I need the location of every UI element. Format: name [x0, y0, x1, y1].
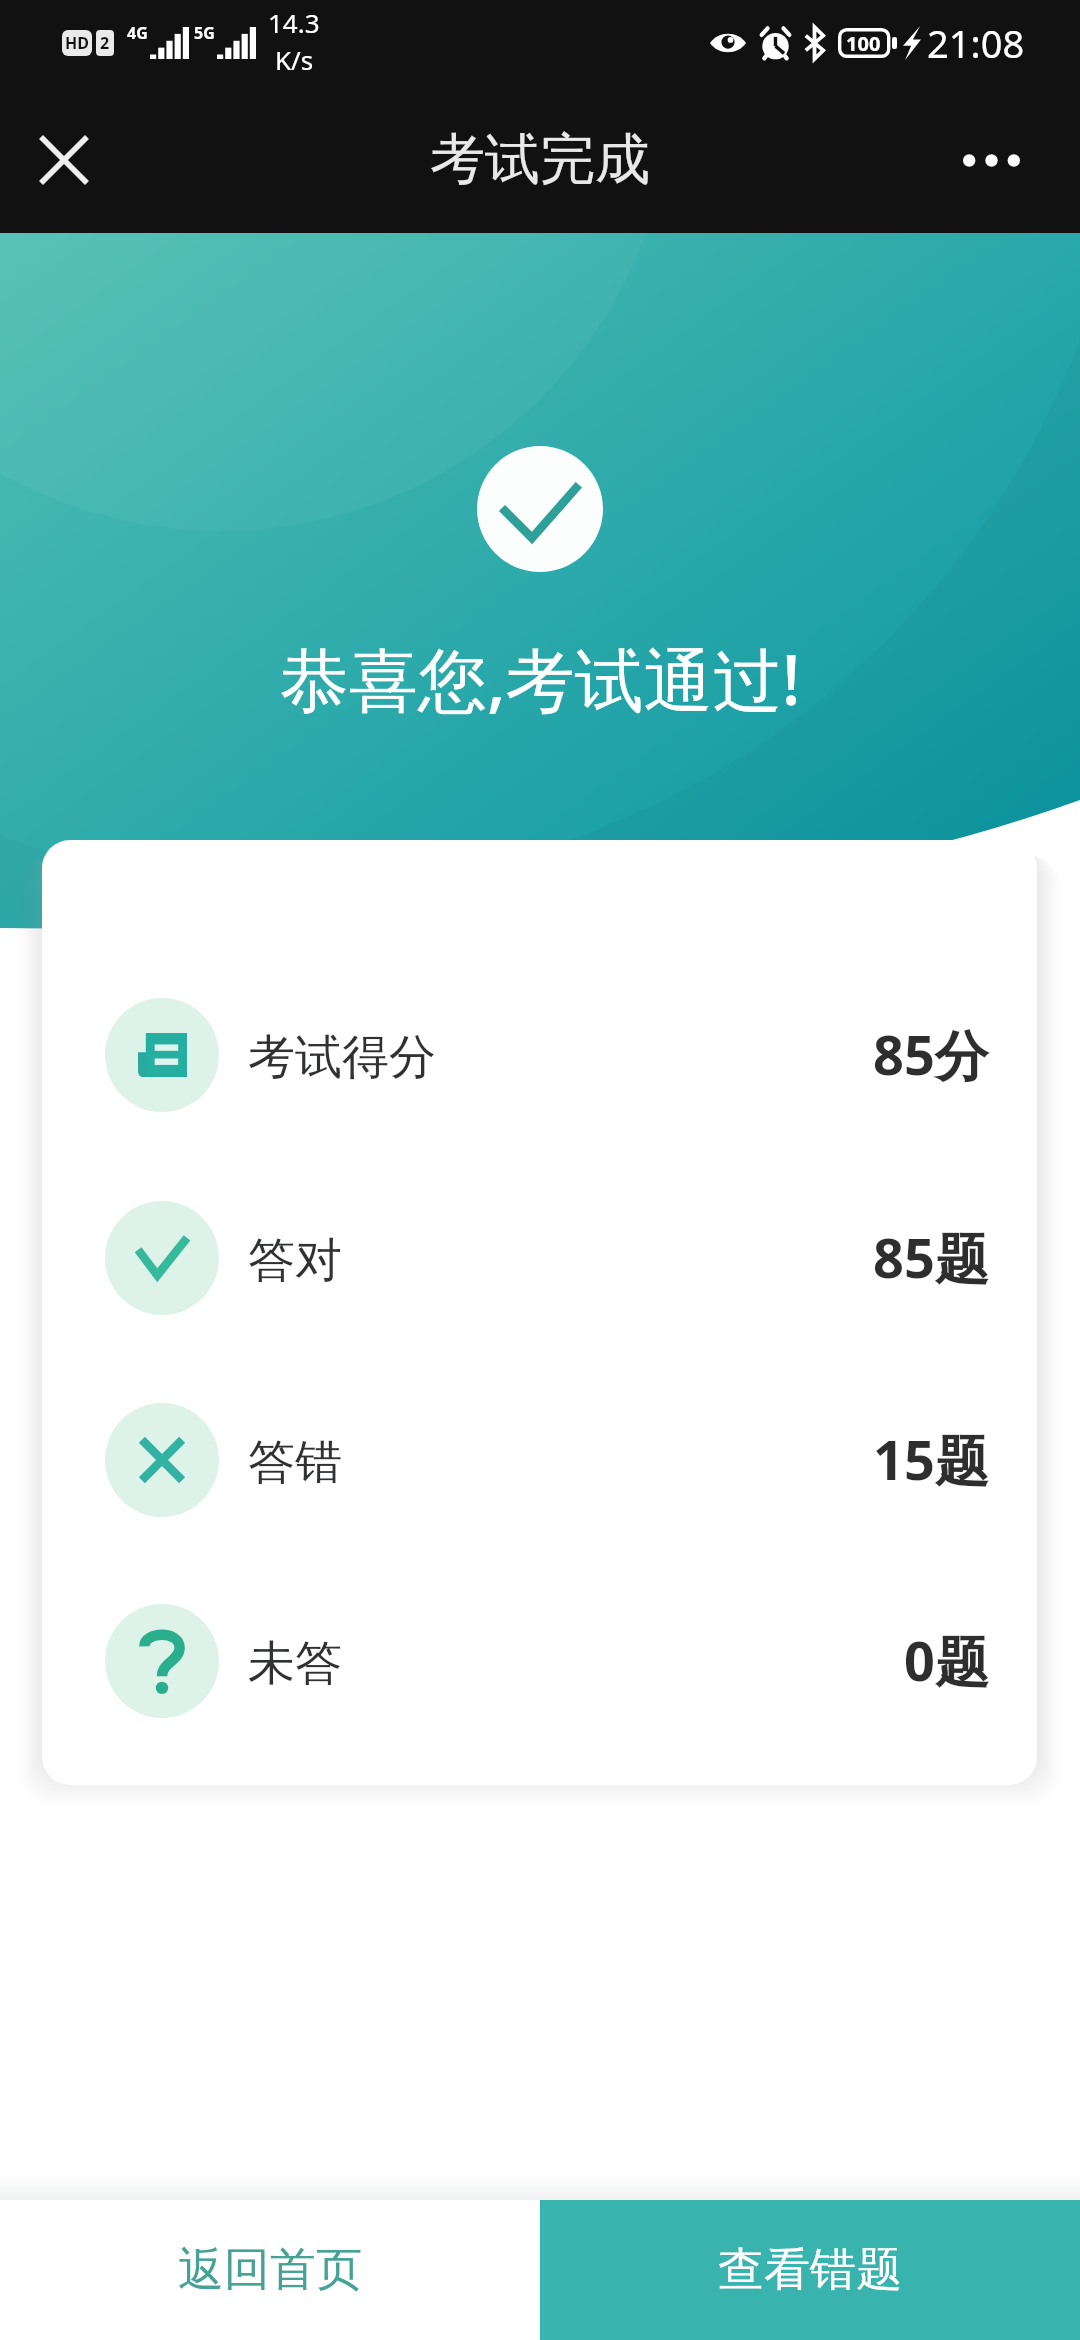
staticText: 15题 — [873, 1422, 989, 1496]
staticText: 恭喜您,考试通过! — [280, 631, 801, 725]
staticText: 返回首页 — [178, 2241, 362, 2299]
staticText: HD — [65, 32, 89, 54]
button[interactable]: 未答 — [42, 1604, 1037, 1718]
staticText: 0题 — [904, 1623, 989, 1697]
staticText: 21:08 — [927, 17, 1025, 69]
button[interactable]: 考试得分 — [42, 998, 1037, 1112]
staticText: 考试完成 — [430, 125, 650, 194]
button[interactable]: 查看错题 — [540, 2200, 1080, 2340]
staticText: K/s — [275, 42, 314, 77]
button[interactable]: 答对 — [42, 1201, 1037, 1315]
staticText: 考试得分 — [248, 1028, 436, 1087]
staticText: 答错 — [248, 1433, 342, 1492]
staticText: 14.3 — [268, 5, 320, 40]
staticText: 查看错题 — [718, 2241, 902, 2299]
button[interactable]: 答错 — [42, 1403, 1037, 1517]
staticText: 2 — [100, 32, 110, 54]
staticText: 答对 — [248, 1231, 342, 1290]
staticText: 85分 — [873, 1017, 989, 1091]
button[interactable]: More options — [949, 118, 1033, 202]
staticText: 未答 — [248, 1634, 342, 1693]
button[interactable]: 返回首页 — [0, 2200, 540, 2340]
staticText: 5G — [194, 22, 215, 44]
staticText: 4G — [127, 22, 148, 44]
staticText: 100 — [846, 30, 881, 57]
staticText: 85题 — [873, 1220, 989, 1294]
button[interactable]: Close — [22, 118, 106, 202]
